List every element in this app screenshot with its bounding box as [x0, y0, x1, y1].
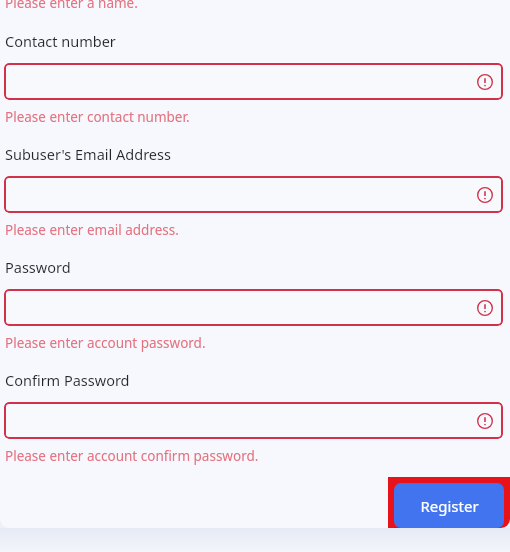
staticText: Please enter a name.: [5, 0, 138, 8]
other: Error: [477, 413, 493, 429]
staticText: Register: [420, 496, 479, 516]
staticText: Please enter email address.: [5, 221, 179, 239]
other: Error: [477, 187, 493, 203]
staticText: Please enter account password.: [5, 334, 206, 352]
staticText: Please enter contact number.: [5, 108, 190, 126]
button[interactable]: Error: [4, 289, 503, 326]
other: Error: [477, 300, 493, 316]
button[interactable]: Error: [4, 176, 503, 213]
button[interactable]: Register: [394, 483, 504, 528]
button[interactable]: Error: [4, 63, 503, 100]
staticText: Contact number: [5, 31, 116, 51]
staticText: Confirm Password: [5, 370, 130, 390]
other: Error: [477, 74, 493, 90]
staticText: Subuser's Email Address: [5, 144, 171, 164]
staticText: Please enter account confirm password.: [5, 447, 259, 465]
staticText: Password: [5, 257, 71, 277]
button[interactable]: Error: [4, 402, 503, 439]
